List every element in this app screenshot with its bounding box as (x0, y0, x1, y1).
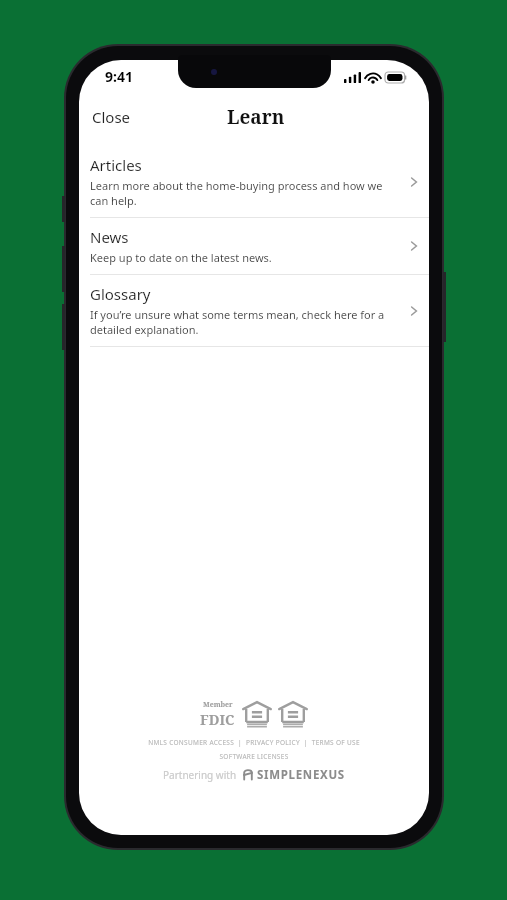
button[interactable]: Glossary (79, 275, 429, 346)
staticText: Keep up to date on the latest news. (90, 250, 272, 265)
staticText: FDIC (200, 710, 235, 729)
button[interactable]: News (79, 218, 429, 274)
button[interactable]: Articles (79, 146, 429, 217)
staticText: News (90, 227, 129, 247)
staticText: SIMPLENEXUS (257, 767, 345, 783)
button[interactable]: SOFTWARE LICENSES (219, 752, 289, 761)
staticText: NMLS CONSUMER ACCESS | PRIVACY POLICY | … (148, 738, 360, 747)
staticText: Articles (90, 155, 142, 175)
staticText: Learn more about the home-buying process… (90, 178, 398, 208)
staticText: If you’re unsure what some terms mean, c… (90, 307, 398, 337)
staticText: 9:41 (105, 67, 133, 86)
button[interactable]: Close (79, 101, 142, 133)
staticText: Glossary (90, 284, 151, 304)
staticText: Close (92, 107, 131, 127)
staticText: Learn (227, 104, 285, 130)
staticText: Member (203, 700, 233, 710)
staticText: Partnering with (163, 768, 237, 782)
